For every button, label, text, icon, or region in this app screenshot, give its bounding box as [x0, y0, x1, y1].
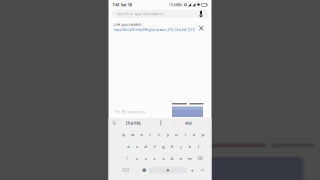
button[interactable]: q — [119, 129, 128, 139]
button[interactable]: a — [124, 141, 133, 151]
staticText: c — [154, 155, 156, 161]
staticText: 7:41 — [112, 2, 119, 7]
staticText: j — [180, 143, 181, 149]
staticText: p — [201, 131, 204, 137]
button[interactable]: k — [185, 141, 194, 151]
staticText: a — [127, 143, 129, 149]
staticText: s — [136, 143, 138, 149]
button[interactable]: n — [177, 153, 185, 163]
staticText: https://bit.ly/3Fm0p0MqjJk4-session_294_… — [113, 28, 194, 32]
button[interactable]: Google — [108, 118, 119, 128]
button[interactable]: s — [133, 141, 141, 151]
staticText: ◂ — [191, 168, 193, 173]
button[interactable]: ⏎ — [196, 165, 208, 175]
button[interactable]: w — [128, 129, 137, 139]
button[interactable]: f — [150, 141, 159, 151]
staticText: k — [189, 143, 191, 149]
button[interactable]: ☻ — [140, 165, 148, 175]
staticText: y — [167, 131, 169, 137]
staticText: The IFR is Licensed to — [114, 110, 145, 114]
staticText: x — [145, 155, 147, 161]
staticText: t — [158, 131, 160, 137]
staticText: 13.6KB/s — [169, 2, 183, 7]
staticText: ?123 — [122, 168, 129, 172]
button[interactable]: l — [194, 141, 203, 151]
staticText: h — [171, 143, 174, 149]
staticText: ⏎ — [200, 168, 203, 173]
button[interactable]: g — [159, 141, 168, 151]
staticText: ⌫ — [197, 156, 203, 161]
staticText: ⇧ — [125, 156, 128, 161]
button[interactable]: Space — [148, 165, 188, 175]
button[interactable]: ⌫ — [194, 153, 206, 163]
button[interactable]: ◂ — [188, 165, 196, 175]
staticText: v — [162, 155, 164, 161]
button[interactable]: m — [185, 153, 194, 163]
button[interactable]: y — [163, 129, 172, 139]
staticText: ☻ — [142, 168, 146, 173]
button[interactable]: c — [150, 153, 159, 163]
button[interactable]: I — [147, 118, 175, 128]
staticText: w — [131, 131, 134, 137]
button[interactable]: r — [146, 129, 155, 139]
staticText: e — [140, 131, 142, 137]
staticText: Link you created — [113, 22, 140, 27]
button[interactable]: j — [177, 141, 185, 151]
staticText: , — [135, 167, 136, 173]
staticText: d — [144, 143, 147, 149]
button[interactable]: v — [159, 153, 168, 163]
button[interactable]: More suggestions — [210, 118, 218, 128]
button[interactable]: b — [168, 153, 177, 163]
staticText: i — [185, 131, 186, 137]
button[interactable]: z — [133, 153, 141, 163]
button[interactable]: , — [132, 165, 140, 175]
button[interactable]: p — [199, 129, 207, 139]
staticText: we — [185, 120, 192, 126]
button[interactable]: h — [168, 141, 177, 151]
button[interactable]: thanks — [119, 118, 146, 128]
button[interactable]: e — [137, 129, 146, 139]
staticText: Search or type web address — [116, 11, 164, 16]
staticText: thanks — [125, 120, 140, 126]
staticText: I — [160, 120, 162, 126]
staticText: b — [171, 155, 174, 161]
button[interactable]: Dismiss — [199, 22, 203, 30]
staticText: m — [188, 155, 192, 161]
staticText: q — [122, 131, 125, 137]
button[interactable]: t — [155, 129, 163, 139]
staticText: l — [198, 143, 199, 149]
button[interactable]: i — [181, 129, 190, 139]
button[interactable]: u — [172, 129, 181, 139]
button[interactable]: Search or type web address — [111, 9, 208, 18]
staticText: u — [175, 131, 178, 137]
staticText: n — [179, 155, 182, 161]
button[interactable]: ?123 — [119, 165, 132, 175]
staticText: g — [162, 143, 165, 149]
button[interactable]: o — [190, 129, 199, 139]
staticText: o — [193, 131, 196, 137]
staticText: z — [136, 155, 138, 161]
staticText: r — [149, 131, 151, 137]
button[interactable]: ⇧ — [121, 153, 133, 163]
button[interactable]: x — [141, 153, 150, 163]
staticText: Sat 18 — [121, 2, 132, 7]
button[interactable]: we — [175, 118, 202, 128]
staticText: f — [154, 143, 155, 149]
staticText: G — [112, 120, 115, 126]
button[interactable]: d — [141, 141, 150, 151]
